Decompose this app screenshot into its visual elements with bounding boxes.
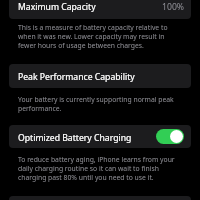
staticText: Peak Performance Capability [18, 71, 135, 83]
staticText: Your battery is currently supporting nor… [18, 95, 179, 113]
staticText: Optimized Battery Charging [18, 132, 132, 144]
button[interactable]: Optimized Battery Charging, on [156, 129, 184, 144]
staticText: To reduce battery aging, iPhone learns f… [18, 155, 179, 182]
button[interactable]: Maximum Capacity [9, 0, 191, 19]
button[interactable]: Optimized Battery Charging [9, 125, 191, 148]
staticText: 100% [162, 1, 185, 13]
staticText: This is a measure of battery capacity re… [18, 23, 179, 50]
staticText: Maximum Capacity [18, 1, 96, 13]
button[interactable]: Peak Performance Capability [9, 64, 191, 88]
